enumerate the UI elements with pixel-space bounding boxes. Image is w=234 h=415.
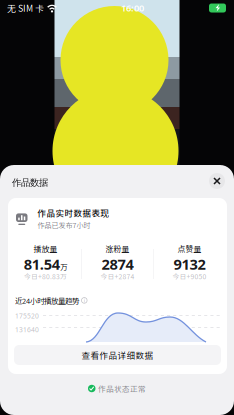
button[interactable]: 查看作品详细数据 bbox=[14, 345, 221, 365]
staticText: 作品数据 bbox=[12, 177, 48, 188]
staticText: 16:00 bbox=[121, 2, 144, 14]
staticText: 无 SIM 卡 bbox=[7, 2, 44, 14]
staticText: 涨粉量 bbox=[105, 243, 129, 254]
staticText: 2874 bbox=[101, 254, 133, 274]
staticText: 81.54 bbox=[24, 254, 60, 274]
staticText: 今日+2874 bbox=[100, 271, 134, 281]
staticText: 131640 bbox=[15, 325, 39, 334]
staticText: 今日+80.83万 bbox=[24, 271, 67, 281]
button[interactable]: 关闭 bbox=[206, 170, 228, 192]
staticText: 查看作品详细数据 bbox=[81, 349, 153, 361]
staticText: 作品已发布7小时 bbox=[37, 220, 90, 230]
staticText: 作品状态正常 bbox=[98, 383, 146, 394]
staticText: 万 bbox=[60, 261, 67, 272]
staticText: 播放量 bbox=[34, 243, 58, 254]
staticText: 9132 bbox=[173, 254, 205, 274]
staticText: 今日+9050 bbox=[172, 271, 206, 281]
staticText: 近24小时播放量趋势 bbox=[15, 295, 79, 306]
staticText: 点赞量 bbox=[177, 243, 201, 254]
staticText: 175520 bbox=[15, 311, 39, 320]
staticText: 作品实时数据表现 bbox=[37, 206, 109, 219]
staticText: i bbox=[84, 297, 85, 304]
